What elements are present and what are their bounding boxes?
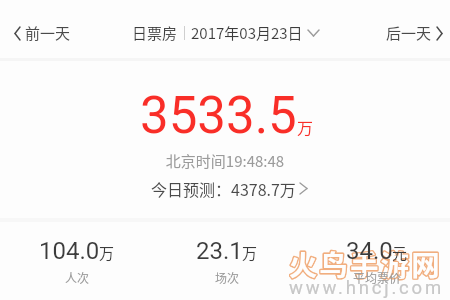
staticText: 万 — [297, 115, 314, 138]
button[interactable]: 日票房 — [130, 17, 321, 49]
staticText: www.hncj.com — [289, 277, 444, 299]
staticText: 日票房 — [132, 22, 178, 44]
button[interactable]: 今日预测：4378.7万 — [147, 174, 311, 203]
button[interactable]: 34.0 — [302, 237, 450, 286]
staticText: 104.0 — [39, 237, 100, 265]
button[interactable]: 后一天 — [380, 16, 448, 50]
staticText: 万 — [242, 242, 258, 264]
button[interactable]: 前一天 — [9, 16, 77, 50]
staticText: 火鸟手游网 — [289, 244, 443, 285]
staticText: 23.1 — [196, 237, 243, 265]
staticText: 后一天 — [386, 22, 432, 44]
staticText: 场次 — [215, 269, 240, 286]
button[interactable]: 104.0 — [2, 237, 152, 286]
staticText: 北京时间19:48:48 — [0, 150, 450, 172]
staticText: 34.0 — [346, 237, 393, 265]
staticText: 2017年03月23日 — [191, 22, 303, 44]
staticText: 前一天 — [25, 22, 71, 44]
staticText: 今日预测：4378.7万 — [151, 177, 296, 200]
staticText: 人次 — [65, 269, 90, 286]
staticText: 3533.5 — [140, 86, 297, 146]
staticText: 火鸟手游网 — [289, 244, 443, 285]
button[interactable]: 23.1 — [152, 237, 302, 286]
staticText: 万 — [99, 242, 115, 264]
staticText: 平均票价 — [353, 269, 402, 286]
staticText: 元 — [392, 242, 408, 264]
